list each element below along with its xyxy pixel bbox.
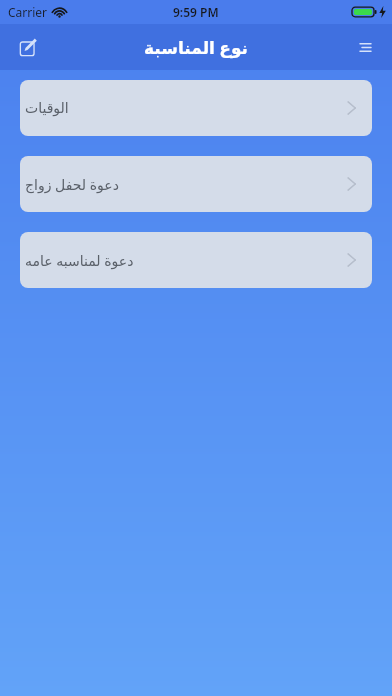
button[interactable]: دعوة لمناسبه عامه — [20, 232, 372, 288]
staticText: دعوة لمناسبه عامه — [25, 251, 134, 270]
staticText: 9:59 PM — [173, 4, 219, 20]
button[interactable]: دعوة لحفل زواج — [20, 156, 372, 212]
staticText: دعوة لحفل زواج — [25, 175, 119, 194]
button[interactable]: Menu — [350, 32, 380, 62]
staticText: Carrier — [8, 4, 48, 20]
staticText: الوقيات — [25, 100, 69, 116]
button[interactable]: الوقيات — [20, 80, 372, 136]
staticText: نوع المناسبة — [144, 36, 248, 59]
button[interactable]: Compose — [12, 31, 44, 63]
